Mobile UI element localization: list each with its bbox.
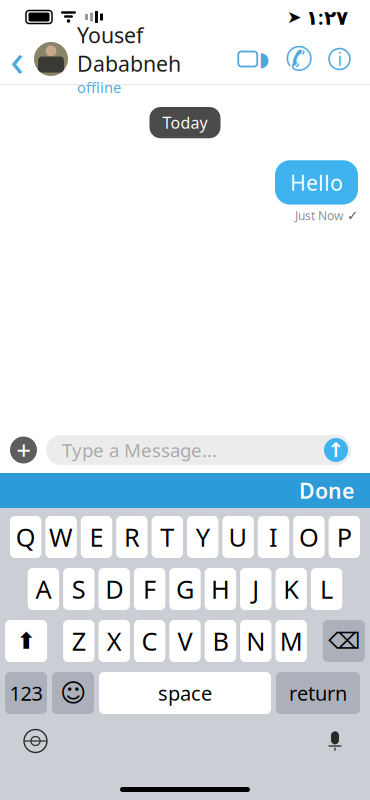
button[interactable]: V: [169, 620, 201, 662]
button[interactable]: O: [293, 516, 325, 558]
staticText: Hello: [290, 168, 343, 196]
button[interactable]: Shift: [5, 620, 47, 662]
staticText: Y: [196, 520, 210, 554]
staticText: V: [177, 624, 192, 658]
staticText: ↑: [327, 439, 344, 461]
button[interactable]: Done: [283, 468, 370, 513]
staticText: O: [299, 520, 319, 554]
staticText: P: [337, 520, 352, 554]
staticText: Just Now: [295, 208, 343, 223]
button[interactable]: Next keyboard: [24, 729, 47, 752]
staticText: i: [337, 47, 341, 70]
button[interactable]: T: [152, 516, 183, 558]
button[interactable]: Type a Message...: [46, 435, 351, 465]
staticText: 123: [9, 680, 42, 706]
button[interactable]: F: [134, 568, 165, 610]
staticText: E: [89, 520, 103, 554]
button[interactable]: N: [240, 620, 271, 662]
staticText: Q: [16, 520, 36, 554]
button[interactable]: Emoji: [52, 672, 94, 714]
button[interactable]: U: [222, 516, 254, 558]
staticText: ⬆: [17, 628, 36, 654]
button[interactable]: P: [329, 516, 360, 558]
button[interactable]: space: [99, 672, 271, 714]
staticText: D: [105, 572, 123, 606]
button[interactable]: D: [98, 568, 130, 610]
button[interactable]: Y: [187, 516, 218, 558]
staticText: ◗: [259, 48, 270, 70]
staticText: L: [320, 572, 333, 606]
staticText: Today: [162, 112, 207, 133]
staticText: H: [211, 572, 230, 606]
button[interactable]: G: [169, 568, 201, 610]
button[interactable]: I: [258, 516, 289, 558]
staticText: space: [158, 680, 212, 706]
button[interactable]: E: [81, 516, 112, 558]
button[interactable]: Back: [0, 37, 34, 81]
button[interactable]: Delete: [323, 620, 365, 662]
button[interactable]: Video call: [239, 46, 269, 72]
button[interactable]: Z: [63, 620, 94, 662]
staticText: Z: [72, 624, 86, 658]
staticText: R: [124, 520, 140, 554]
staticText: T: [160, 520, 174, 554]
button[interactable]: Q: [10, 516, 41, 558]
staticText: A: [35, 572, 51, 606]
staticText: +: [16, 433, 30, 467]
button[interactable]: Yousef Dababneh: [34, 21, 181, 97]
button[interactable]: Add attachment: [10, 436, 37, 463]
staticText: M: [280, 624, 303, 658]
staticText: ✆: [285, 40, 313, 78]
button[interactable]: 123: [5, 672, 47, 714]
staticText: ١:٢٧: [306, 4, 348, 30]
staticText: ✓: [347, 208, 358, 223]
button[interactable]: Contact info: [329, 48, 350, 69]
button[interactable]: Dictation: [324, 729, 346, 753]
button[interactable]: X: [98, 620, 130, 662]
button[interactable]: K: [275, 568, 307, 610]
staticText: Done: [299, 476, 354, 505]
button[interactable]: C: [134, 620, 165, 662]
staticText: ➤: [287, 7, 302, 27]
button[interactable]: S: [63, 568, 94, 610]
staticText: K: [283, 572, 299, 606]
button[interactable]: B: [205, 620, 236, 662]
staticText: W: [49, 520, 73, 554]
staticText: ⌫: [328, 628, 360, 654]
staticText: offline: [77, 78, 121, 97]
staticText: ‹: [10, 29, 24, 89]
button[interactable]: W: [45, 516, 77, 558]
button[interactable]: R: [116, 516, 148, 558]
staticText: U: [229, 520, 248, 554]
button[interactable]: M: [275, 620, 307, 662]
staticText: F: [143, 572, 156, 606]
staticText: X: [107, 624, 122, 658]
staticText: I: [269, 520, 278, 554]
staticText: C: [142, 624, 158, 658]
staticText: S: [72, 572, 86, 606]
staticText: Yousef Dababneh: [77, 21, 181, 78]
button[interactable]: H: [205, 568, 236, 610]
button[interactable]: J: [240, 568, 271, 610]
staticText: N: [246, 624, 265, 658]
staticText: ☺: [60, 679, 86, 707]
staticText: return: [289, 680, 347, 706]
button[interactable]: A: [28, 568, 59, 610]
staticText: B: [212, 624, 228, 658]
staticText: Type a Message...: [62, 438, 217, 462]
button[interactable]: L: [311, 568, 342, 610]
staticText: G: [176, 572, 194, 606]
button[interactable]: Voice call: [287, 46, 311, 72]
button[interactable]: return: [276, 672, 360, 714]
staticText: J: [252, 572, 259, 606]
